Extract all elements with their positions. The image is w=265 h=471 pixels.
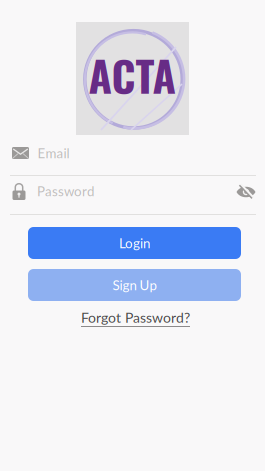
- staticText: Login: [119, 235, 150, 251]
- button[interactable]: Forgot Password?: [81, 309, 190, 326]
- staticText: Email: [37, 145, 69, 161]
- staticText: Password: [37, 183, 94, 199]
- button[interactable]: Login: [28, 227, 241, 259]
- staticText: Sign Up: [112, 277, 156, 293]
- staticText: ACTA: [88, 43, 176, 106]
- button[interactable]: Sign Up: [28, 269, 241, 301]
- button[interactable]: Show password: [236, 183, 256, 199]
- staticText: Forgot Password?: [81, 309, 190, 326]
